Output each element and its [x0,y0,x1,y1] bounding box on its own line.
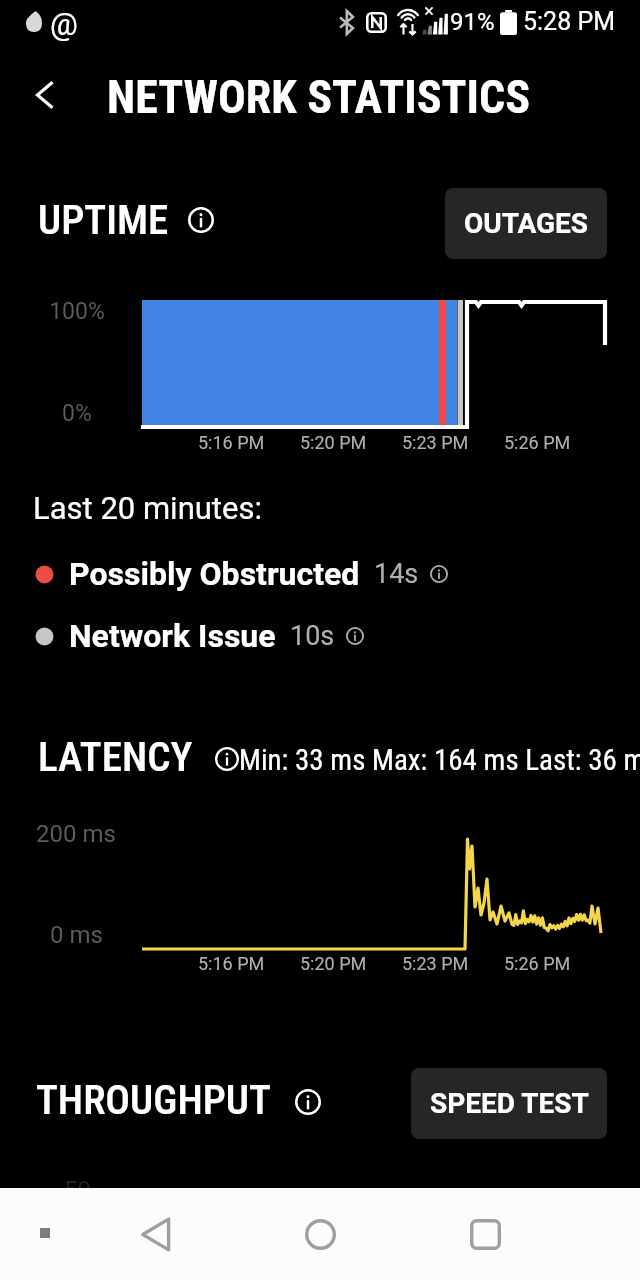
staticText: @ [50,6,78,42]
staticText: 5:23 PM [402,953,469,974]
staticText: 5:26 PM [504,953,571,974]
staticText: Last 20 minutes: [33,490,262,526]
button[interactable]: Back [127,1205,185,1263]
staticText: 200 ms [36,820,116,848]
staticText: LATENCY [38,733,193,781]
button[interactable]: Latency info [209,741,244,776]
button[interactable]: Back [24,74,66,116]
staticText: 5:16 PM [198,953,265,974]
staticText: 91% [450,8,495,36]
staticText: OUTAGES [464,207,589,240]
staticText: Min: 33 ms Max: 164 ms Last: 36 ms [239,743,640,777]
staticText: 100% [49,298,105,325]
staticText: 0% [62,400,92,427]
staticText: SPEED TEST [430,1087,589,1120]
button[interactable]: Recent apps [456,1205,514,1263]
button[interactable]: OUTAGES [445,188,607,259]
staticText: Possibly Obstructed [69,555,360,593]
staticText: 50 [64,1176,91,1204]
staticText: 14s [374,558,419,590]
staticText: THROUGHPUT [36,1076,271,1124]
button[interactable]: Menu [21,1209,69,1257]
button[interactable]: Throughput info [290,1084,325,1119]
staticText: 5:28 PM [523,7,616,36]
button[interactable]: Uptime info [184,203,218,237]
staticText: 10s [290,620,335,652]
staticText: 5:16 PM [198,432,265,453]
staticText: 5:20 PM [300,953,367,974]
button[interactable]: Network Issue [35,614,364,658]
staticText: 0 ms [50,921,103,949]
staticText: 5:20 PM [300,432,367,453]
button[interactable]: Possibly Obstructed [35,552,448,596]
button[interactable]: SPEED TEST [411,1068,607,1139]
staticText: 5:23 PM [402,432,469,453]
button[interactable]: Home [291,1205,349,1263]
staticText: Network Issue [69,617,276,655]
staticText: 5:26 PM [504,432,571,453]
staticText: UPTIME [38,196,169,244]
staticText: NETWORK STATISTICS [107,70,531,124]
